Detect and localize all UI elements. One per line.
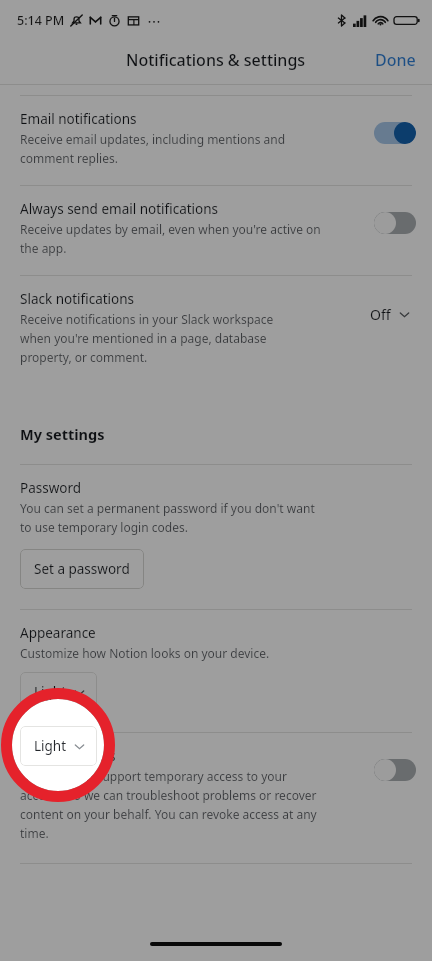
staticText: Light — [34, 737, 67, 755]
button[interactable]: Switch on — [374, 122, 416, 144]
button[interactable]: Always send email notifications — [0, 186, 432, 275]
button[interactable]: Slack notifications — [0, 276, 432, 384]
button[interactable]: Appearance — [0, 610, 432, 732]
staticText: Light — [34, 683, 67, 701]
staticText: Done — [375, 49, 416, 71]
button[interactable]: Set a password — [20, 549, 144, 589]
button[interactable]: Switch off — [374, 759, 416, 781]
button[interactable]: Support access — [0, 733, 432, 863]
staticText: Set a password — [34, 560, 130, 578]
button[interactable]: Light — [20, 672, 97, 712]
staticText: Always send email notifications — [20, 200, 219, 218]
button[interactable]: Switch off — [374, 212, 416, 234]
staticText: Receive updates by email, even when you'… — [20, 221, 321, 256]
staticText: Receive email updates, including mention… — [20, 131, 286, 166]
staticText: Customize how Notion looks on your devic… — [20, 645, 270, 661]
other: Appearance setting highlight — [0, 0, 432, 961]
staticText: My settings — [20, 424, 105, 444]
staticText: Slack notifications — [20, 290, 135, 308]
button[interactable]: Done — [359, 40, 432, 80]
staticText: You can set a permanent password if you … — [20, 500, 315, 535]
button[interactable]: Email notifications — [0, 96, 432, 185]
staticText: Password — [20, 479, 82, 497]
button[interactable]: Password — [0, 465, 432, 609]
button[interactable]: Light — [20, 726, 97, 766]
staticText: Receive notifications in your Slack work… — [20, 311, 274, 365]
button[interactable]: Off — [364, 302, 416, 327]
staticText: 5:14 PM — [17, 12, 65, 29]
staticText: Email notifications — [20, 110, 137, 128]
staticText: Notifications & settings — [126, 49, 306, 71]
staticText: Off — [370, 305, 391, 324]
staticText: Grant Notion support temporary access to… — [20, 768, 317, 841]
staticText: Support access — [20, 747, 116, 765]
staticText: Appearance — [20, 624, 96, 642]
